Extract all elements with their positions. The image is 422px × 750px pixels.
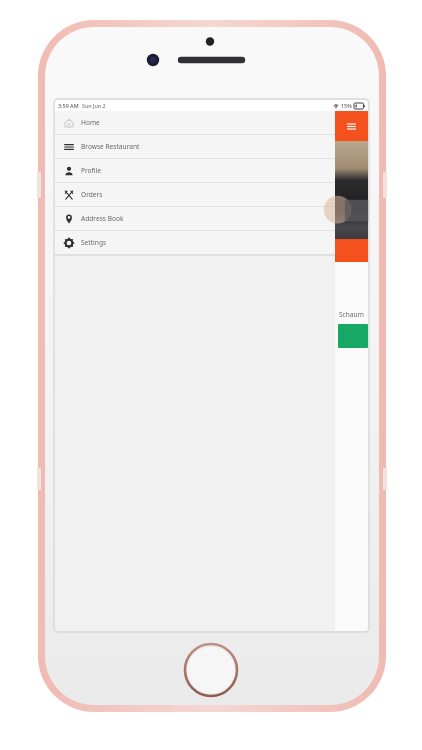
button[interactable]: Settings	[55, 231, 335, 255]
staticText: Address Book	[81, 214, 124, 223]
button[interactable]: Home	[55, 111, 335, 135]
button[interactable]: Orders	[55, 183, 335, 207]
button[interactable]: Address Book	[55, 207, 335, 231]
staticText: 15%	[341, 102, 352, 109]
staticText: Sun Jun 2	[82, 102, 106, 109]
button[interactable]: Open navigation menu	[335, 111, 368, 141]
staticText: Profile	[81, 166, 101, 175]
staticText: Home	[81, 118, 100, 127]
staticText: Browse Restaurant	[81, 142, 140, 151]
button[interactable]: Order action	[338, 324, 368, 348]
staticText: Orders	[81, 190, 103, 199]
button[interactable]: Profile	[55, 159, 335, 183]
staticText: Settings	[81, 238, 107, 247]
staticText: Schaum	[339, 310, 364, 319]
button[interactable]: Browse Restaurant	[55, 135, 335, 159]
staticText: 3:59 AM	[58, 102, 79, 109]
